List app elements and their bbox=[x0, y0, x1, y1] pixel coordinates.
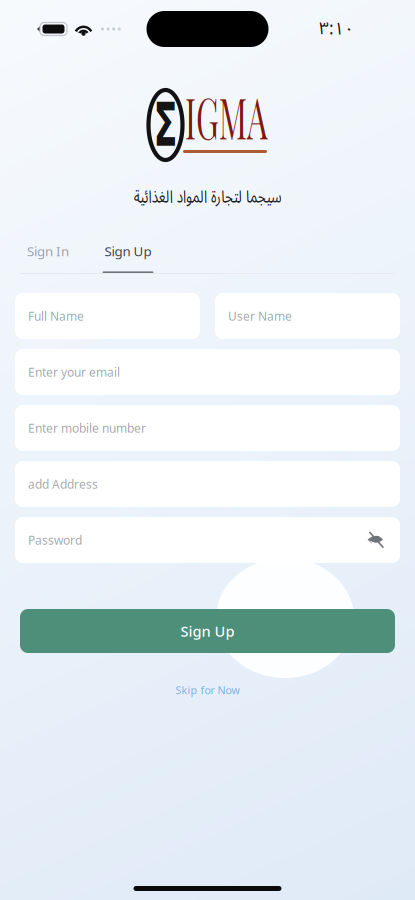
staticText: Skip for Now bbox=[175, 683, 239, 697]
staticText: Password bbox=[28, 532, 82, 548]
button[interactable]: Sign Up bbox=[20, 609, 395, 653]
staticText: User Name bbox=[228, 308, 292, 324]
staticText: Sign Up bbox=[104, 242, 151, 260]
button[interactable]: Sign Up bbox=[100, 235, 156, 274]
staticText: Enter mobile number bbox=[28, 420, 146, 436]
staticText: Sign In bbox=[27, 242, 69, 260]
staticText: IGMA bbox=[185, 79, 327, 153]
staticText: ٣:١٠ bbox=[319, 11, 354, 47]
staticText: add Address bbox=[28, 476, 98, 492]
staticText: Σ bbox=[143, 88, 187, 162]
staticText: سيجما لتجارة المواد الغذائية bbox=[112, 179, 302, 215]
staticText: Sign Up bbox=[180, 621, 234, 641]
staticText: Full Name bbox=[28, 308, 84, 324]
staticText: Enter your email bbox=[28, 364, 120, 380]
button[interactable]: Sign In bbox=[20, 235, 76, 274]
button[interactable]: Skip for Now bbox=[175, 683, 239, 697]
